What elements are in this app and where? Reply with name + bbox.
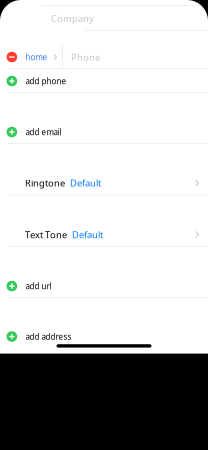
staticText: Ringtone [25,177,65,189]
staticText: add url [26,281,52,291]
staticText: add phone [26,76,67,86]
staticText: Text Tone [25,228,67,241]
button[interactable]: add email [0,120,208,144]
button[interactable]: home [0,45,208,69]
button[interactable]: add url [0,274,208,298]
staticText: Company [51,12,94,25]
button[interactable]: Ringtone [0,170,208,195]
staticText: Phone [71,51,100,63]
staticText: Default [70,177,101,189]
button[interactable]: add address [0,324,208,348]
button[interactable]: add phone [0,69,208,93]
staticText: add email [26,127,62,137]
staticText: add address [26,331,72,342]
button[interactable]: Text Tone [0,222,208,247]
staticText: home [26,52,48,62]
staticText: Default [72,228,103,241]
